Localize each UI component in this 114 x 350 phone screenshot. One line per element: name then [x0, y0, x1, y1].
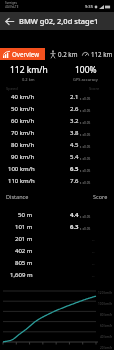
staticText: s ±0.05: [79, 215, 91, 219]
staticText: s ±0.05: [79, 121, 91, 125]
button[interactable]: 100 km/h: [0, 163, 114, 175]
staticText: 20 km/h: [100, 346, 113, 350]
staticText: 4.4: [70, 211, 79, 219]
staticText: 2.1: [70, 93, 79, 101]
staticText: 7.6: [70, 177, 79, 185]
staticText: 201 m: [15, 235, 33, 243]
button[interactable]: 201 m: [0, 233, 114, 245]
button[interactable]: 112 km: [82, 50, 113, 58]
button[interactable]: 50 km/h: [0, 103, 114, 115]
staticText: --: [92, 249, 95, 254]
staticText: 60 km/h: [11, 117, 35, 125]
button[interactable]: 0.2 km: [50, 50, 78, 58]
staticText: 4G/VoLTE: [5, 5, 19, 9]
staticText: Score: [89, 86, 100, 91]
button[interactable]: 40 km/h: [0, 91, 114, 103]
staticText: 70 km/h: [11, 129, 35, 137]
staticText: 100 km/h: [8, 165, 35, 173]
staticText: 5.4: [70, 153, 79, 161]
staticText: 805 m: [15, 259, 33, 267]
staticText: Overview: [12, 50, 39, 58]
staticText: 90 km/h: [11, 153, 35, 161]
button[interactable]: Overview: [0, 48, 45, 60]
staticText: s ±0.05: [79, 109, 91, 113]
staticText: 120 km/h: [98, 291, 113, 295]
button[interactable]: 60 km/h: [0, 115, 114, 127]
staticText: 3.8: [70, 129, 79, 137]
staticText: 2.6: [70, 105, 79, 113]
staticText: --: [92, 261, 95, 266]
staticText: 9:35: [85, 4, 93, 9]
button[interactable]: 110 km/h: [0, 175, 114, 187]
staticText: 100 km/h: [98, 302, 113, 306]
staticText: 6.5: [70, 165, 79, 173]
button[interactable]: 80 km/h: [0, 139, 114, 151]
staticText: s ±0.05: [79, 97, 91, 101]
staticText: Distance: [6, 193, 29, 200]
staticText: s ±0.05: [79, 145, 91, 149]
staticText: 100%: [75, 64, 97, 76]
button[interactable]: 101 m: [0, 221, 114, 233]
button[interactable]: 50 m: [0, 209, 114, 221]
staticText: 112 km: [91, 50, 113, 58]
staticText: 1,609 m: [10, 271, 33, 279]
button[interactable]: 90 km/h: [0, 151, 114, 163]
staticText: Score: [93, 193, 108, 200]
staticText: s ±0.05: [79, 133, 91, 137]
staticText: 40 km/h: [11, 93, 35, 101]
staticText: 40 km/h: [100, 335, 113, 339]
staticText: 80 km/h: [100, 313, 113, 317]
staticText: 110 km/h: [8, 177, 35, 185]
staticText: BMW g02, 2,0d stage1: [19, 16, 99, 26]
staticText: 50 m: [18, 211, 33, 219]
staticText: 402 m: [15, 247, 33, 255]
staticText: s ±0.05: [79, 157, 91, 161]
staticText: --: [92, 273, 95, 278]
staticText: GPS accuracy: [73, 77, 98, 82]
button[interactable]: Back: [0, 12, 19, 30]
staticText: s ±0.05: [79, 227, 91, 231]
staticText: s ±0.05: [79, 181, 91, 185]
staticText: 0.2 km: [22, 77, 35, 82]
staticText: 60 km/h: [100, 324, 113, 328]
staticText: s ±0.05: [79, 169, 91, 173]
button[interactable]: 1,609 m: [0, 269, 114, 281]
staticText: --: [92, 237, 95, 242]
button[interactable]: 805 m: [0, 257, 114, 269]
staticText: 112 km/h: [10, 64, 48, 76]
staticText: 50 km/h: [11, 105, 35, 113]
button[interactable]: 70 km/h: [0, 127, 114, 139]
staticText: 3.2: [70, 117, 79, 125]
staticText: Speed: [6, 86, 18, 91]
button[interactable]: 402 m: [0, 245, 114, 257]
staticText: 0.2 km: [58, 50, 78, 58]
staticText: 80 km/h: [11, 141, 35, 149]
staticText: Sveriges: [5, 1, 17, 5]
staticText: 6.3: [70, 223, 79, 231]
staticText: 4.5: [70, 141, 79, 149]
staticText: 101 m: [15, 223, 33, 231]
